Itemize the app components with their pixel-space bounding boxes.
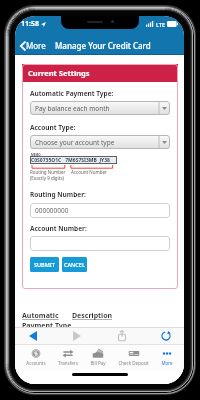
button[interactable]: Check Deposit bbox=[117, 349, 150, 366]
staticText: Accounts bbox=[26, 360, 46, 366]
staticText: Bill Pay bbox=[90, 360, 106, 366]
staticText: Transfers bbox=[58, 360, 78, 366]
staticText: Current Settings bbox=[28, 68, 90, 78]
staticText: 11:58 bbox=[21, 19, 39, 29]
staticText: SUBMIT bbox=[34, 261, 55, 268]
button[interactable]: More bbox=[18, 38, 48, 53]
button[interactable]: Transfers bbox=[57, 349, 79, 366]
staticText: Routing Number bbox=[30, 169, 66, 175]
staticText: Check Deposit bbox=[118, 360, 149, 366]
staticText: Choose your account type bbox=[35, 138, 115, 147]
staticText: 000000000 bbox=[35, 206, 69, 215]
staticText: LTE bbox=[156, 21, 165, 28]
staticText: MEMO bbox=[31, 153, 41, 157]
staticText: Account Number: bbox=[30, 224, 87, 233]
button[interactable]: Forward bbox=[65, 327, 89, 344]
button[interactable]: Reload bbox=[154, 327, 178, 344]
staticText: More bbox=[26, 40, 46, 51]
button[interactable] bbox=[30, 236, 170, 251]
button[interactable]: 000000000 bbox=[30, 203, 170, 218]
staticText: Description bbox=[72, 311, 113, 321]
button[interactable]: More bbox=[160, 349, 174, 366]
staticText: Automatic bbox=[22, 311, 59, 321]
staticText: (Exactly 9 digits) bbox=[30, 175, 64, 181]
staticText: CANCEL bbox=[64, 261, 85, 268]
button[interactable]: SUBMIT bbox=[30, 257, 59, 272]
button[interactable]: Back bbox=[21, 327, 45, 344]
staticText: Payment Type bbox=[22, 321, 72, 331]
staticText: Account Type: bbox=[30, 123, 76, 132]
staticText: Account Number bbox=[71, 169, 107, 175]
button[interactable]: Accounts bbox=[25, 349, 47, 366]
staticText: More bbox=[161, 360, 173, 366]
button[interactable]: Share bbox=[110, 327, 134, 344]
button[interactable]: Bill Pay bbox=[89, 349, 107, 366]
button[interactable]: Choose your account type bbox=[30, 135, 170, 149]
staticText: Automatic Payment Type: bbox=[30, 89, 114, 98]
button[interactable]: Pay balance each month bbox=[30, 101, 170, 115]
staticText: C0S0735O1C 7M6S7SI3MB JY38 bbox=[31, 157, 110, 164]
staticText: Pay balance each month bbox=[35, 104, 110, 113]
staticText: Routing Number: bbox=[30, 190, 86, 199]
button[interactable]: CANCEL bbox=[62, 257, 87, 272]
staticText: Manage Your Credit Card bbox=[55, 40, 151, 51]
